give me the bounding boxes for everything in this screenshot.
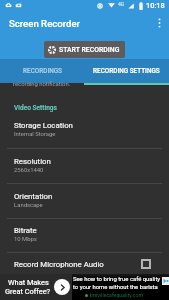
button[interactable]: Orientation — [0, 189, 169, 219]
staticText: 2560x1440 — [14, 167, 44, 174]
button[interactable]: START RECORDING — [44, 41, 125, 58]
staticText: RECORDING SETTINGS — [93, 67, 160, 75]
button[interactable]: More options — [149, 13, 169, 33]
button[interactable]: What Makes — [0, 274, 169, 300]
button[interactable]: Bitrate — [0, 223, 169, 253]
staticText: Resolution — [14, 157, 51, 166]
button[interactable]: Storage Location — [0, 118, 169, 148]
staticText: brevillecafequality.com — [90, 292, 144, 298]
staticText: See how to bring true café quality — [73, 276, 161, 283]
staticText: Great Coffee? — [5, 287, 51, 296]
button[interactable]: Record Microphone Audio — [0, 255, 169, 273]
staticText: to your home without the barista — [73, 284, 158, 291]
other: Open ad — [54, 279, 70, 295]
button[interactable]: RECORDING SETTINGS — [84, 59, 169, 83]
button[interactable]: Resolution — [0, 154, 169, 184]
button[interactable]: RECORDINGS — [0, 59, 84, 83]
staticText: 10:18 — [146, 1, 165, 10]
staticText: What Makes — [8, 278, 49, 287]
staticText: START RECORDING — [59, 46, 120, 54]
other: Ad choices — [162, 277, 169, 285]
staticText: Storage Location — [14, 121, 73, 130]
staticText: Landscape — [14, 202, 43, 209]
staticText: RECORDINGS — [23, 67, 62, 75]
staticText: Bitrate — [14, 226, 37, 235]
staticText: Video Settings — [14, 104, 57, 112]
staticText: 10 Mbps — [14, 236, 37, 243]
staticText: 4G — [118, 1, 125, 7]
staticText: Orientation — [14, 192, 53, 201]
staticText: Record Microphone Audio — [14, 260, 104, 269]
staticText: recording notification. — [13, 81, 71, 88]
staticText: Internal Storage — [14, 131, 56, 138]
staticText: Screen Recorder — [9, 18, 80, 29]
